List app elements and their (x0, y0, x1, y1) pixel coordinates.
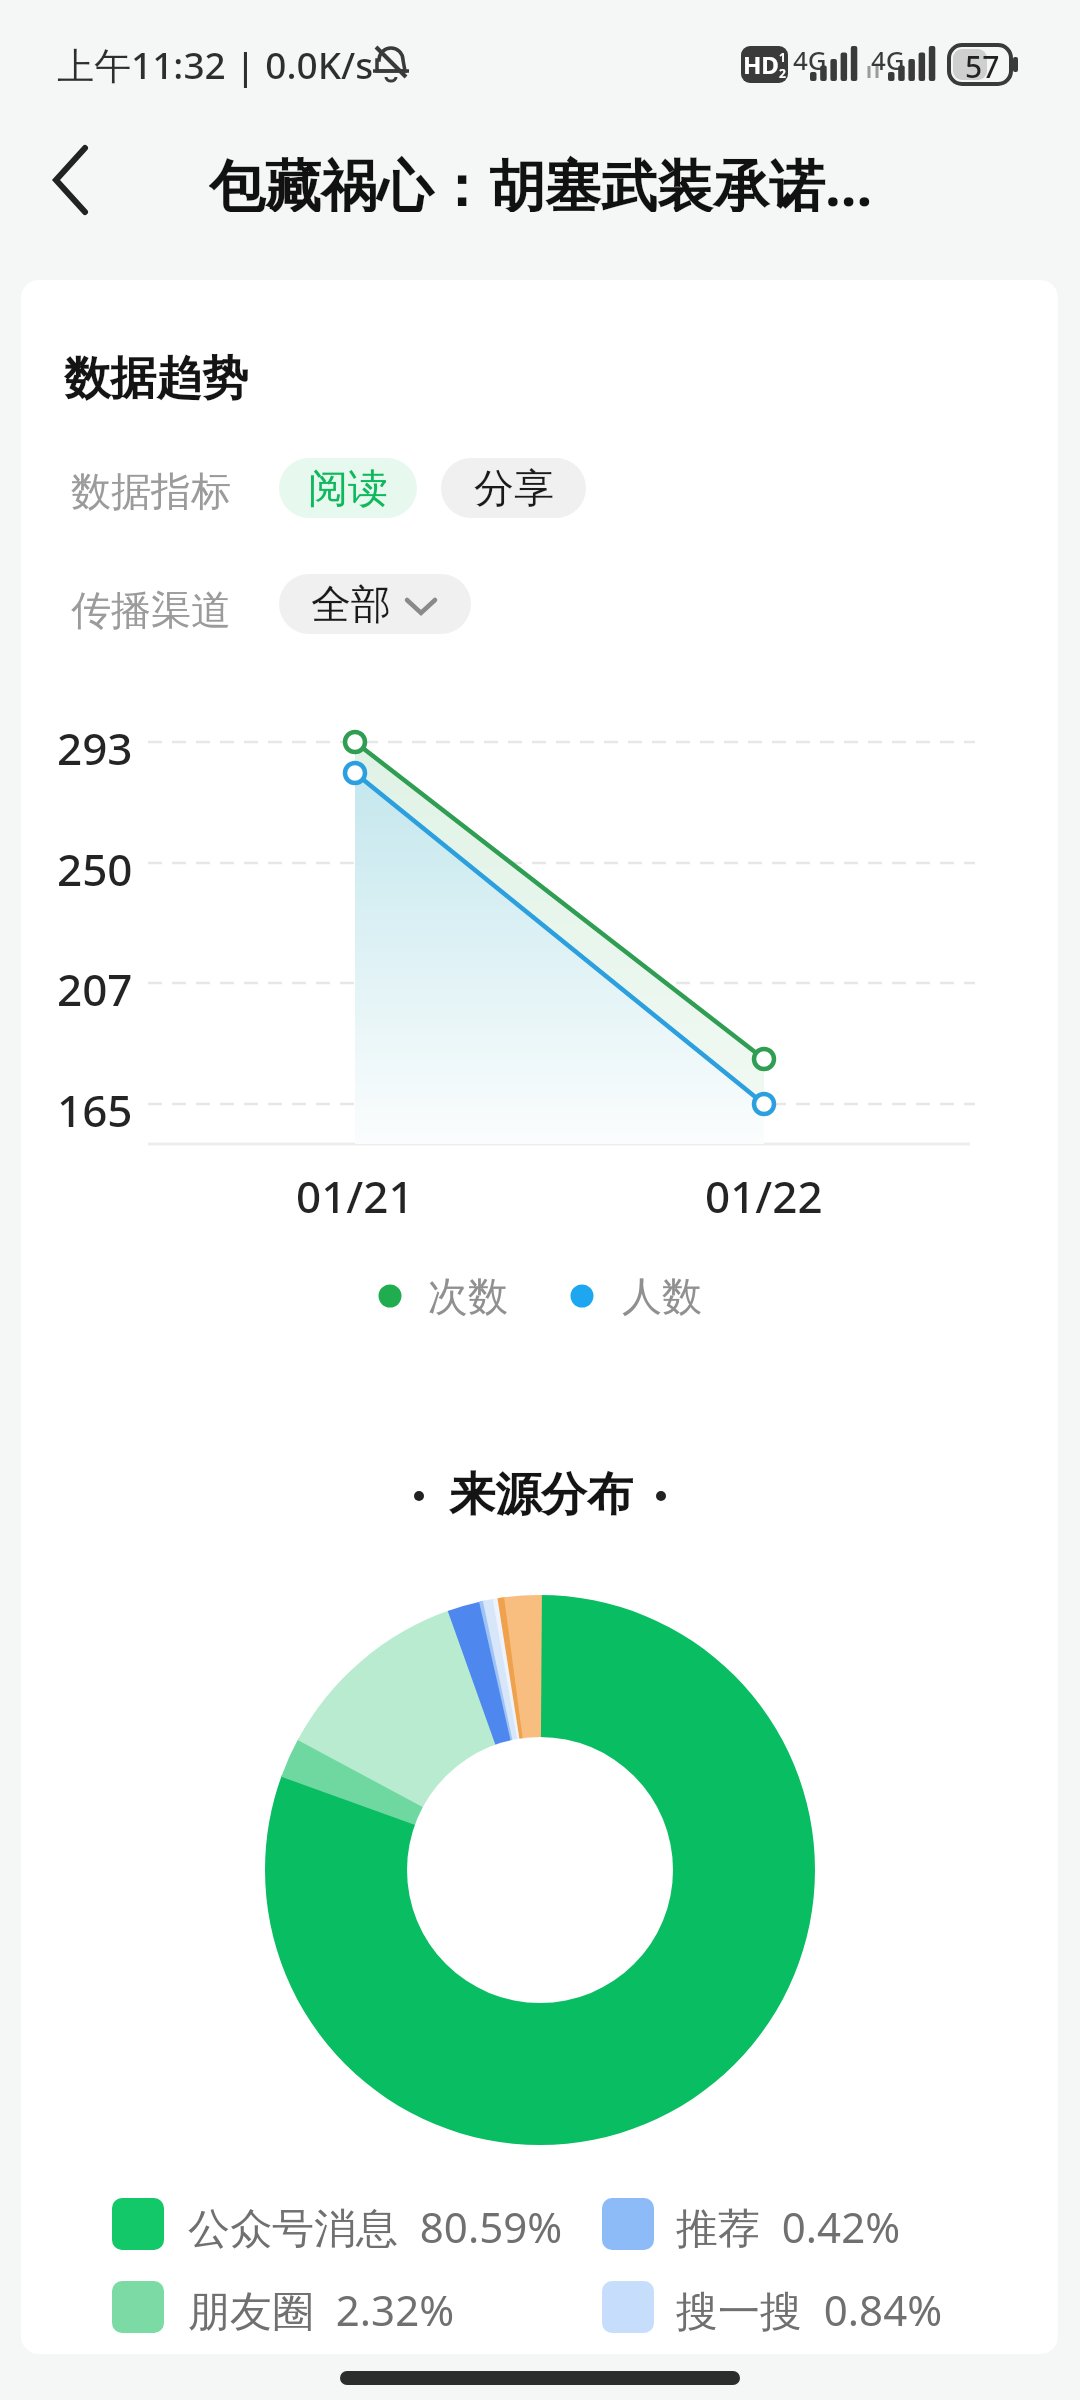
staticText: 全部 (311, 579, 391, 629)
staticText: HD (743, 48, 779, 81)
staticText: 朋友圈 2.32% (188, 2281, 455, 2333)
button[interactable]: 全部 (279, 574, 471, 634)
staticText: 次数 (428, 1271, 508, 1321)
staticText: 数据趋势 (64, 350, 248, 404)
staticText: HD (745, 48, 781, 82)
staticText: 公众号消息 80.59% (188, 2198, 563, 2250)
staticText: 分享 (474, 463, 554, 513)
staticText: 推荐 0.42% (676, 2198, 901, 2250)
staticText: 包藏祸心：胡塞武装承诺... (209, 146, 873, 212)
staticText: 数据指标 (71, 466, 231, 516)
staticText: 来源分布 (449, 1466, 633, 1522)
staticText: 01/21 (296, 1166, 414, 1218)
staticText: 阅读 (308, 463, 388, 513)
staticText: 293 (57, 718, 133, 766)
staticText: 57 (965, 46, 1000, 84)
staticText: 人数 (622, 1271, 702, 1321)
staticText: 传播渠道 (71, 585, 231, 635)
staticText: 搜一搜 0.84% (676, 2281, 943, 2333)
staticText: 01/22 (705, 1166, 823, 1218)
staticText: 4G (871, 42, 905, 72)
staticText: 4G (793, 42, 827, 72)
staticText: 207 (57, 959, 133, 1007)
staticText: 250 (57, 839, 133, 887)
button[interactable]: 阅读 (279, 458, 417, 518)
staticText: 上午11:32 | 0.0K/s (57, 39, 374, 90)
staticText: 2 (779, 65, 786, 81)
button[interactable]: 分享 (441, 458, 586, 518)
staticText: 1 (779, 49, 786, 65)
button[interactable] (36, 140, 116, 220)
staticText: 165 (57, 1080, 133, 1128)
